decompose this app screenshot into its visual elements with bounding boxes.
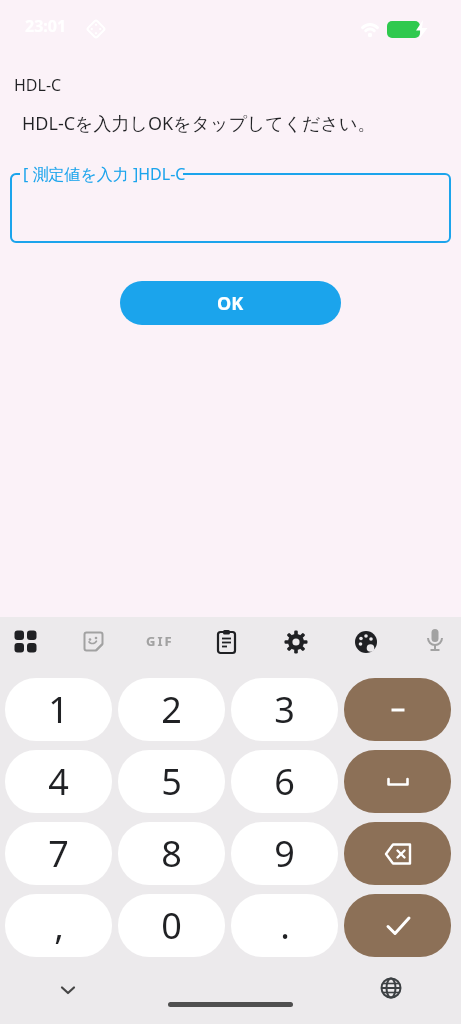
staticText: 7 [48, 829, 69, 878]
staticText: 2 [161, 685, 182, 734]
button[interactable] [344, 750, 451, 813]
staticText: 0 [161, 901, 182, 950]
button[interactable] [354, 630, 378, 654]
button[interactable] [83, 631, 105, 653]
staticText: 1 [48, 685, 69, 734]
button[interactable]: 8 [118, 822, 225, 885]
button[interactable]: 6 [231, 750, 338, 813]
button[interactable]: 5 [118, 750, 225, 813]
button[interactable] [10, 173, 451, 243]
staticText: 3 [274, 685, 295, 734]
button[interactable]: 1 [5, 678, 112, 741]
staticText: 8 [161, 829, 182, 878]
button[interactable] [425, 628, 445, 655]
staticText: OK [217, 291, 244, 316]
button[interactable]: 4 [5, 750, 112, 813]
button[interactable] [14, 630, 37, 653]
staticText: 6 [274, 757, 295, 806]
button[interactable] [59, 984, 77, 996]
button[interactable]: 7 [5, 822, 112, 885]
button[interactable] [344, 894, 451, 957]
button[interactable]: 3 [231, 678, 338, 741]
staticText: HDL-Cを入力しOKをタップしてください。 [22, 111, 376, 136]
button[interactable]: 2 [118, 678, 225, 741]
button[interactable] [380, 977, 402, 999]
staticText: HDL-C [14, 74, 62, 96]
staticText: 4 [48, 757, 69, 806]
staticText: . [280, 901, 290, 950]
button[interactable] [283, 629, 309, 655]
staticText: 23:01 [25, 15, 67, 37]
button[interactable] [344, 678, 451, 741]
staticText: [ 測定値を入力 ]HDL-C [23, 163, 186, 185]
button[interactable]: 9 [231, 822, 338, 885]
button[interactable] [344, 822, 451, 885]
button[interactable] [216, 629, 238, 655]
staticText: 9 [274, 829, 295, 878]
button[interactable]: . [231, 894, 338, 957]
staticText: , [54, 901, 64, 950]
button[interactable]: , [5, 894, 112, 957]
staticText: 5 [161, 757, 182, 806]
button[interactable]: OK [120, 281, 341, 325]
button[interactable]: 0 [118, 894, 225, 957]
button[interactable]: GIF [146, 632, 174, 650]
